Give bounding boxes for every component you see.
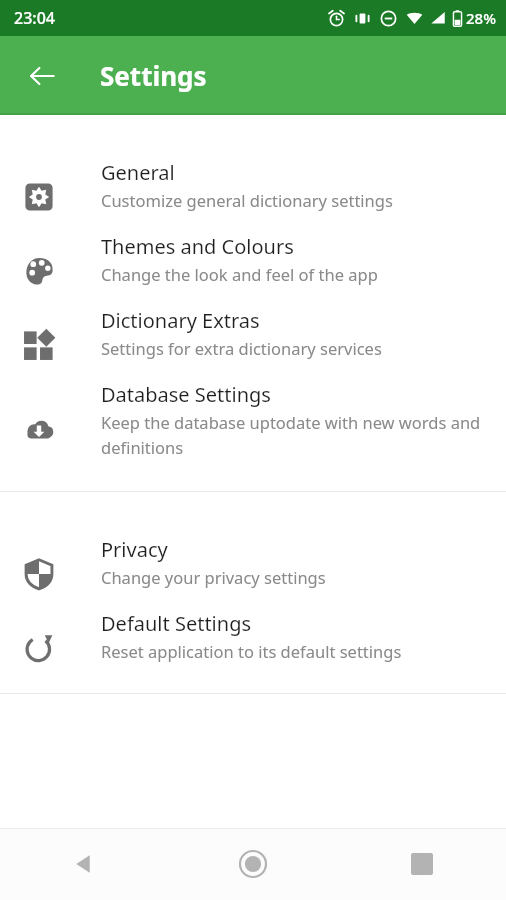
staticText: Database Settings bbox=[101, 381, 271, 408]
button[interactable]: Default Settings bbox=[0, 610, 506, 662]
staticText: Dictionary Extras bbox=[101, 307, 260, 334]
button[interactable]: Database Settings bbox=[0, 381, 506, 458]
button[interactable]: Privacy bbox=[0, 536, 506, 588]
staticText: Change the look and feel of the app bbox=[101, 263, 378, 285]
staticText: Privacy bbox=[101, 536, 168, 563]
staticText: 23:04 bbox=[14, 7, 55, 29]
button[interactable]: Themes and Colours bbox=[0, 233, 506, 285]
staticText: General bbox=[101, 159, 175, 186]
button[interactable]: Dictionary Extras bbox=[0, 307, 506, 359]
button[interactable]: Back bbox=[0, 828, 168, 900]
button[interactable]: Back bbox=[18, 52, 66, 100]
staticText: Reset application to its default setting… bbox=[101, 640, 402, 662]
staticText: Customize general dictionary settings bbox=[101, 189, 393, 211]
button[interactable]: Home bbox=[168, 828, 337, 900]
button[interactable]: Recent apps bbox=[337, 828, 506, 900]
staticText: Settings for extra dictionary services bbox=[101, 337, 382, 359]
staticText: Default Settings bbox=[101, 610, 252, 637]
button[interactable]: General bbox=[0, 159, 506, 211]
staticText: 28% bbox=[466, 8, 496, 28]
staticText: Themes and Colours bbox=[101, 233, 294, 260]
staticText: Keep the database uptodate with new word… bbox=[101, 411, 486, 458]
staticText: Change your privacy settings bbox=[101, 566, 326, 588]
staticText: Settings bbox=[100, 58, 207, 93]
